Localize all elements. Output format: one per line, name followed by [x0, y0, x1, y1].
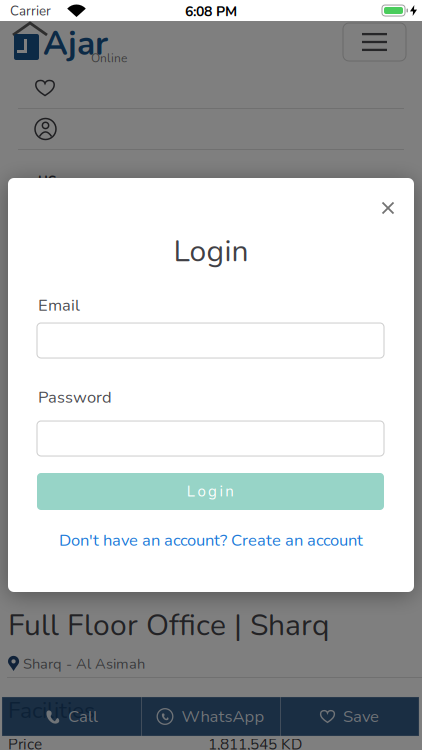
- staticText: Login: [187, 481, 234, 502]
- staticText: US: [38, 172, 56, 190]
- staticText: Price: [8, 734, 42, 750]
- button[interactable]: Call: [2, 697, 141, 736]
- button[interactable]: Login: [37, 473, 384, 510]
- button[interactable]: Favorites: [0, 68, 422, 108]
- staticText: Don't have an account? Create an account: [59, 529, 363, 552]
- staticText: Facilities: [8, 695, 95, 726]
- staticText: Call: [68, 705, 98, 728]
- staticText: 6:08 PM: [185, 2, 237, 21]
- staticText: Login: [173, 231, 248, 272]
- staticText: WhatsApp: [181, 705, 264, 728]
- staticText: 1,811,545 KD: [208, 734, 302, 750]
- staticText: Full Floor Office | Sharq: [8, 605, 329, 646]
- button[interactable]: Menu: [343, 23, 406, 61]
- staticText: Password: [38, 386, 112, 409]
- button[interactable]: Password: [37, 421, 384, 456]
- button[interactable]: Email: [37, 323, 384, 358]
- staticText: Online: [91, 50, 127, 66]
- staticText: Save: [343, 705, 379, 728]
- staticText: Carrier: [10, 2, 51, 20]
- button[interactable]: Language: [38, 169, 98, 193]
- staticText: Email: [38, 294, 80, 317]
- button[interactable]: WhatsApp: [141, 697, 280, 736]
- button[interactable]: Don't have an account? Create an account: [8, 529, 414, 552]
- button[interactable]: Account: [0, 109, 422, 149]
- button[interactable]: Close: [374, 194, 401, 221]
- button[interactable]: Save: [280, 697, 419, 736]
- staticText: Ajar: [43, 21, 108, 66]
- staticText: Sharq - Al Asimah: [23, 654, 145, 674]
